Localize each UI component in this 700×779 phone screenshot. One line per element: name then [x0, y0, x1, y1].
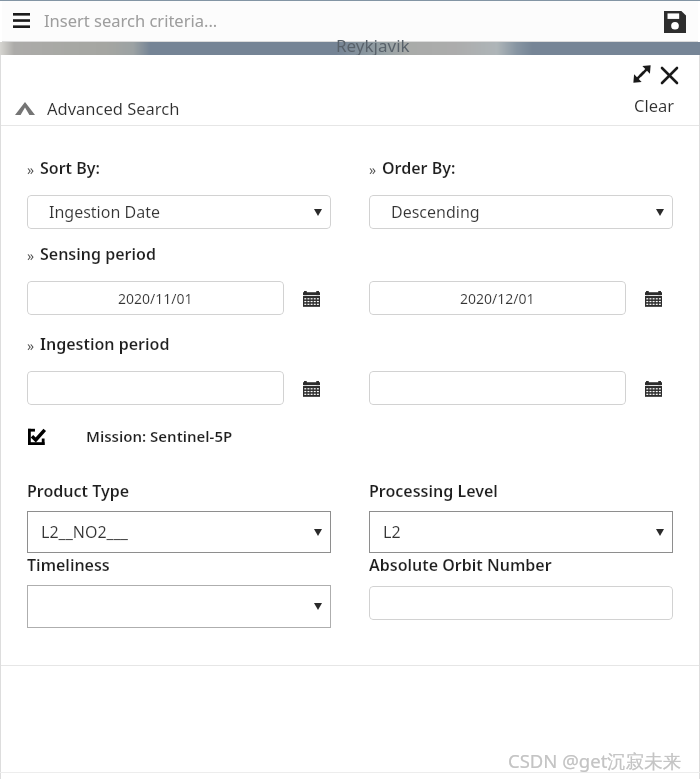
staticText: Ingestion period [40, 333, 170, 355]
button[interactable]: Pick date [299, 376, 323, 400]
button[interactable]: Pick date [641, 376, 665, 400]
staticText: Mission: Sentinel-5P [86, 426, 233, 446]
button[interactable]: Menu [7, 0, 36, 41]
staticText: L2__NO2___ [41, 521, 128, 543]
staticText: CSDN @get沉寂未来 [508, 748, 682, 773]
staticText: 2020/11/01 [118, 289, 193, 308]
button[interactable]: 2020/12/01 [369, 281, 626, 315]
button[interactable] [27, 371, 284, 405]
button[interactable]: L2 [369, 511, 673, 553]
button[interactable]: Save search [657, 1, 693, 43]
staticText: » [27, 160, 35, 179]
staticText: 2020/12/01 [460, 289, 535, 308]
staticText: » [27, 336, 35, 355]
button[interactable] [369, 586, 673, 620]
button[interactable]: Close [655, 61, 683, 89]
button[interactable]: Mission: Sentinel-5P [26, 424, 235, 448]
staticText: Descending [391, 201, 480, 223]
staticText: Timeliness [27, 554, 110, 576]
button[interactable] [369, 371, 626, 405]
staticText: Product Type [27, 480, 130, 502]
button[interactable]: Advanced Search [13, 95, 182, 121]
staticText: Clear [634, 94, 675, 116]
button[interactable]: Ingestion Date [27, 195, 331, 229]
button[interactable] [27, 585, 331, 628]
button[interactable]: L2__NO2___ [27, 511, 331, 553]
staticText: Sensing period [40, 243, 156, 265]
button[interactable]: 2020/11/01 [27, 281, 284, 315]
staticText: » [369, 160, 377, 179]
button[interactable]: Expand [628, 60, 656, 88]
staticText: Sort By: [40, 157, 101, 179]
staticText: Processing Level [369, 480, 498, 502]
staticText: Advanced Search [47, 97, 180, 119]
button[interactable]: Clear [630, 92, 679, 118]
staticText: Insert search criteria... [44, 9, 218, 31]
button[interactable]: Pick date [299, 286, 323, 310]
staticText: Order By: [382, 157, 456, 179]
staticText: Reykjavik [336, 34, 410, 57]
button[interactable]: Descending [369, 195, 673, 229]
staticText: L2 [383, 521, 401, 543]
staticText: Absolute Orbit Number [369, 554, 552, 576]
staticText: » [27, 246, 35, 265]
staticText: Ingestion Date [49, 201, 160, 223]
button[interactable]: Pick date [641, 286, 665, 310]
